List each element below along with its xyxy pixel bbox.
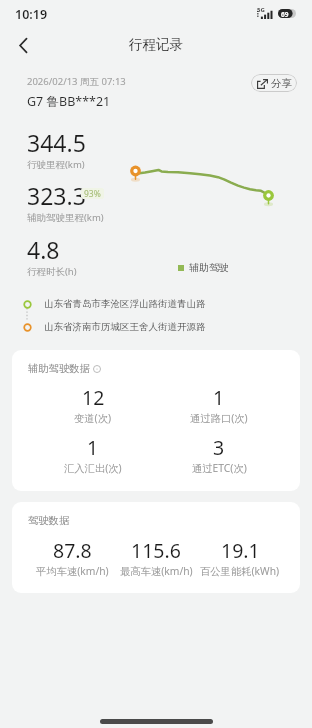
staticText: 1 xyxy=(87,434,99,461)
staticText: 行程时长(h) xyxy=(27,265,77,278)
staticText: 平均车速(km/h) xyxy=(36,564,109,578)
staticText: 通过ETC(次) xyxy=(192,461,247,475)
staticText: 变道(次) xyxy=(74,411,112,425)
staticText: 93% xyxy=(84,188,101,199)
staticText: 2026/02/13 周五 07:13 xyxy=(27,75,126,88)
staticText: 辅助驾驶里程(km) xyxy=(27,211,104,224)
staticText: G7 鲁BB***21 xyxy=(27,93,111,110)
staticText: 323.3 xyxy=(27,180,86,211)
staticText: 山东省青岛市李沧区浮山路街道青山路 xyxy=(44,298,206,310)
staticText: 87.8 xyxy=(53,537,92,564)
staticText: 5G xyxy=(257,6,265,14)
staticText: 344.5 xyxy=(27,127,86,158)
button[interactable]: Back xyxy=(6,28,40,62)
staticText: 115.6 xyxy=(131,537,181,564)
staticText: 19.1 xyxy=(221,537,260,564)
staticText: 10:19 xyxy=(15,6,48,23)
staticText: 行程记录 xyxy=(129,36,183,53)
staticText: 百公里能耗(kWh) xyxy=(200,564,280,578)
staticText: 辅助驾驶 xyxy=(189,261,229,274)
staticText: 汇入汇出(次) xyxy=(64,461,122,475)
staticText: 通过路口(次) xyxy=(190,411,248,425)
staticText: 辅助驾驶数据 xyxy=(28,362,90,375)
staticText: 1 xyxy=(213,384,225,411)
staticText: 驾驶数据 xyxy=(28,514,70,527)
button[interactable]: 分享 xyxy=(251,74,297,92)
staticText: 69 xyxy=(281,10,289,19)
staticText: 3 xyxy=(213,434,225,461)
staticText: 山东省济南市历城区王舍人街道开源路 xyxy=(44,321,206,333)
staticText: 分享 xyxy=(271,77,292,90)
staticText: 12 xyxy=(82,384,105,411)
staticText: 行驶里程(km) xyxy=(27,158,85,171)
staticText: 4.8 xyxy=(27,234,60,265)
staticText: 最高车速(km/h) xyxy=(120,564,193,578)
